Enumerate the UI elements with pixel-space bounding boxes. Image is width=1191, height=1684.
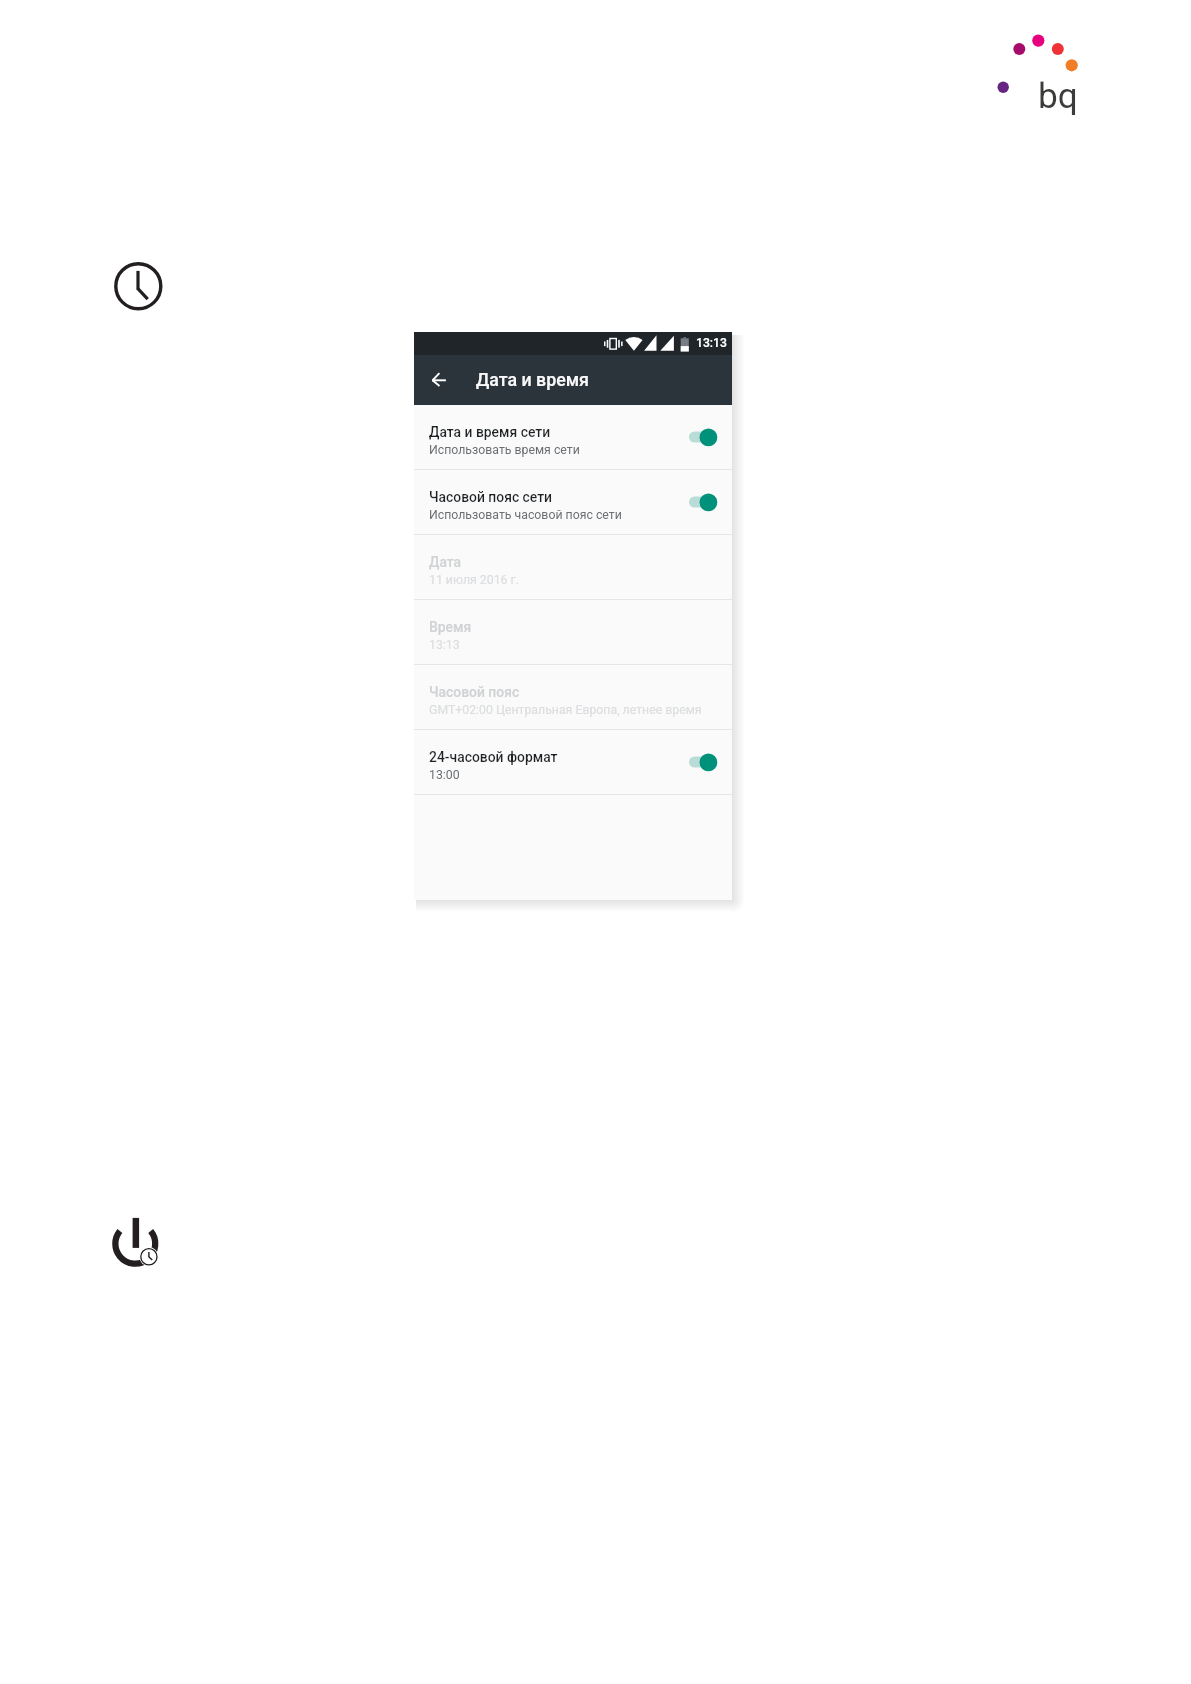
staticText: bq: [1038, 75, 1078, 116]
staticText: 24-часовой формат: [429, 749, 558, 765]
staticText: Часовой пояс сети: [429, 489, 553, 505]
button[interactable]: Время: [414, 600, 732, 664]
staticText: GMT+02:00 Центральная Европа, летнее вре…: [429, 703, 702, 717]
button[interactable]: Дата: [414, 535, 732, 599]
button[interactable]: Дата и время сети: [414, 405, 732, 469]
button[interactable]: Часовой пояс: [414, 665, 732, 729]
staticText: Дата и время: [476, 369, 589, 390]
button[interactable]: Часовой пояс сети: [414, 470, 732, 534]
staticText: Использовать часовой пояс сети: [429, 508, 622, 522]
staticText: 11 июля 2016 г.: [429, 573, 519, 587]
staticText: 13:00: [429, 768, 460, 782]
button[interactable]: Toggle Дата и время сети: [690, 416, 732, 458]
other: bq logo: [993, 30, 1088, 115]
button[interactable]: Back: [424, 363, 458, 397]
staticText: 13:13: [696, 336, 727, 350]
button[interactable]: 24-часовой формат: [414, 730, 732, 794]
staticText: 13:13: [429, 638, 460, 652]
staticText: Дата и время сети: [429, 424, 551, 440]
other: Power: [108, 1212, 166, 1270]
button[interactable]: Toggle Часовой пояс сети: [690, 481, 732, 523]
other: Clock: [111, 260, 166, 315]
button[interactable]: Toggle 24-часовой формат: [690, 741, 732, 783]
staticText: Дата: [429, 554, 462, 570]
staticText: Часовой пояс: [429, 684, 520, 700]
staticText: Использовать время сети: [429, 443, 580, 457]
staticText: Время: [429, 619, 472, 635]
